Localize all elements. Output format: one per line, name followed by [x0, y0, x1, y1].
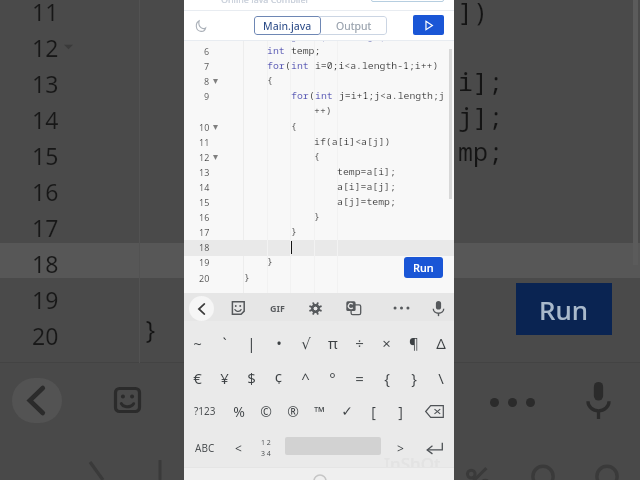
staticText: ( [285, 59, 291, 72]
staticText: \ [438, 368, 444, 388]
staticText: } [291, 225, 297, 238]
staticText: ~ [193, 333, 202, 353]
staticText: 13 [32, 68, 59, 98]
staticText: ® [287, 402, 299, 421]
staticText: √ [301, 335, 311, 352]
button[interactable]: ¶ [400, 329, 427, 357]
button[interactable]: Output [321, 16, 387, 35]
button[interactable]: ¥ [211, 364, 238, 392]
button[interactable]: Settings [301, 295, 329, 321]
button[interactable]: × [373, 329, 400, 357]
staticText: for(j=i+1;a[i],a[j];) [268, 41, 392, 43]
button[interactable]: ?123 key [184, 397, 225, 425]
button[interactable]: [ [360, 397, 387, 425]
staticText: $ [247, 368, 256, 388]
button[interactable]: € [184, 364, 211, 392]
staticText: i]; [458, 64, 504, 98]
staticText: int [291, 59, 309, 72]
button[interactable]: $ [238, 364, 265, 392]
staticText: j]; [458, 99, 504, 133]
button[interactable]: ^ [292, 364, 319, 392]
button[interactable]: Enter [414, 434, 454, 462]
staticText: Online Java Compiler [221, 0, 310, 3]
staticText: 14 [199, 181, 210, 193]
staticText: ] [398, 402, 403, 421]
button[interactable]: ABC [184, 434, 225, 462]
staticText: π [328, 333, 338, 353]
button[interactable]: Toggle dark mode [188, 12, 214, 38]
button[interactable]: ~ [184, 329, 211, 357]
button[interactable]: Next [387, 434, 414, 462]
button[interactable]: ¢ [265, 364, 292, 392]
button[interactable]: π [319, 329, 346, 357]
button[interactable]: ] [387, 397, 414, 425]
staticText: [ [371, 402, 376, 421]
staticText: 12 [32, 32, 59, 62]
button[interactable]: More options [387, 295, 415, 321]
staticText: ° [329, 368, 336, 388]
staticText: 12 [199, 151, 210, 163]
staticText: • [276, 333, 282, 353]
button[interactable]: Translate [339, 295, 367, 321]
button[interactable]: \ [427, 364, 454, 392]
button[interactable]: GIF [263, 295, 291, 321]
staticText: 7 [204, 60, 210, 72]
button[interactable]: ® [279, 397, 306, 425]
staticText: Run [539, 292, 589, 327]
button[interactable]: Numbers [252, 434, 279, 462]
button[interactable]: ™ [306, 397, 333, 425]
button[interactable]: © [252, 397, 279, 425]
staticText: } [244, 271, 250, 284]
staticText: ¥ [220, 368, 229, 388]
staticText: j=i+1;j<a.length;j [333, 89, 445, 102]
staticText: < [235, 440, 242, 456]
button[interactable]: Main.java [254, 16, 321, 35]
staticText: ?123 [194, 404, 216, 418]
staticText: 17 [32, 212, 59, 242]
button[interactable]: ° [319, 364, 346, 392]
staticText: 10 [199, 121, 210, 133]
staticText: ™ [314, 402, 325, 421]
button[interactable]: ✓ [333, 397, 360, 425]
button[interactable]: | [238, 329, 265, 357]
button[interactable]: • [265, 329, 292, 357]
staticText: { [314, 150, 320, 163]
staticText: 15 [32, 140, 59, 170]
staticText: % [233, 402, 245, 421]
staticText: ]) [458, 0, 489, 28]
staticText: Δ [436, 333, 446, 353]
button[interactable]: Δ [427, 329, 454, 357]
button[interactable]: = [346, 364, 373, 392]
staticText: a[j]=temp; [337, 195, 396, 208]
staticText: 19 [199, 256, 210, 268]
staticText: Output [336, 19, 372, 33]
button[interactable]: Close panel [187, 295, 215, 321]
staticText: = [355, 368, 364, 388]
button[interactable]: Voice input [424, 295, 452, 321]
staticText: © [260, 402, 272, 421]
button[interactable]: Backspace [414, 397, 455, 425]
button[interactable]: { [373, 364, 400, 392]
staticText: InShOt [384, 452, 441, 475]
button[interactable]: } [400, 364, 427, 392]
staticText: 11 [32, 0, 59, 26]
staticText: 16 [199, 211, 210, 223]
staticText: for [267, 59, 285, 72]
button[interactable]: Run code [413, 15, 444, 35]
button[interactable]: % [225, 397, 252, 425]
staticText: { [291, 120, 297, 133]
staticText: { [384, 368, 390, 388]
staticText: 8 [204, 75, 210, 87]
button[interactable]: Previous [225, 434, 252, 462]
staticText: if(a[i]<a[j]) [314, 135, 391, 148]
button[interactable]: Stickers [224, 295, 252, 321]
button[interactable]: Run [404, 257, 443, 278]
staticText: i=0;i<a.length-1;i++) [309, 59, 439, 72]
button[interactable]: √ [292, 329, 319, 357]
button[interactable]: ` [211, 329, 238, 357]
button[interactable]: ÷ [346, 329, 373, 357]
staticText: 1 2 [261, 438, 271, 448]
staticText: 6 [204, 45, 210, 57]
staticText: 18 [199, 241, 210, 253]
